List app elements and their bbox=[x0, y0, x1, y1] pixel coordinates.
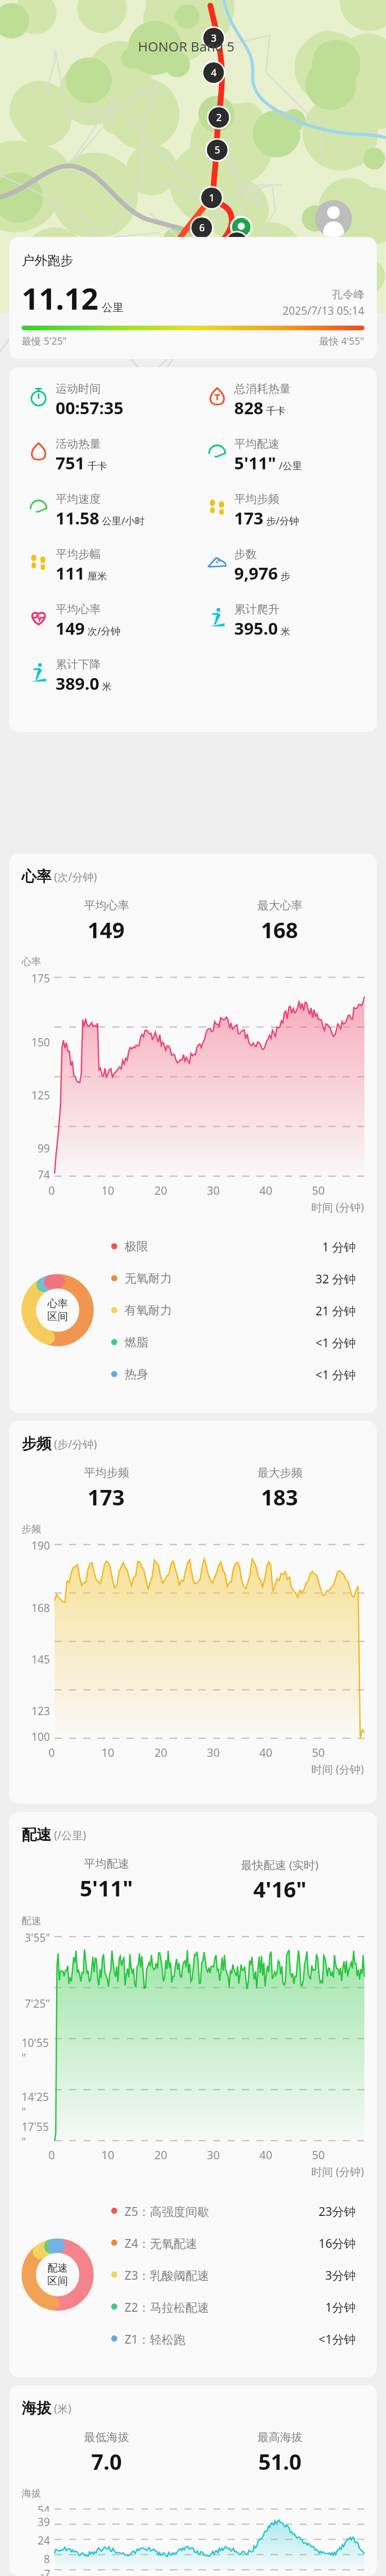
staticText: 149 bbox=[56, 617, 85, 640]
staticText: 20 bbox=[154, 2147, 168, 2162]
staticText: 50 bbox=[312, 2147, 325, 2162]
staticText: 123 bbox=[31, 1704, 50, 1719]
staticText: 389.0 bbox=[56, 672, 99, 695]
staticText: 173 bbox=[87, 1482, 125, 1512]
staticText: 燃脂 bbox=[125, 1335, 148, 1350]
staticText: 5'11" bbox=[234, 451, 276, 474]
staticText: 总消耗热量 bbox=[234, 382, 291, 396]
staticText: 3 bbox=[211, 31, 217, 45]
staticText: 9,976 bbox=[234, 562, 278, 585]
staticText: 千卡 bbox=[87, 460, 107, 472]
staticText: 16分钟 bbox=[319, 2235, 356, 2251]
staticText: <1 分钟 bbox=[315, 1366, 356, 1382]
staticText: 平均步频 bbox=[234, 492, 279, 506]
staticText: 热身 bbox=[125, 1367, 148, 1382]
staticText: 千卡 bbox=[266, 405, 286, 417]
staticText: 时间 (分钟) bbox=[311, 1762, 364, 1777]
staticText: -7 bbox=[41, 2567, 50, 2576]
staticText: 145 bbox=[31, 1652, 50, 1667]
staticText: Z1：轻松跑 bbox=[125, 2331, 186, 2347]
staticText: 5 bbox=[215, 143, 220, 157]
staticText: 运动时间 bbox=[56, 382, 101, 396]
staticText: 心率 bbox=[22, 867, 51, 886]
staticText: 828 bbox=[234, 396, 264, 419]
staticText: 1 bbox=[209, 191, 215, 205]
staticText: 平均心率 bbox=[56, 602, 101, 617]
staticText: 32 分钟 bbox=[315, 1270, 356, 1286]
staticText: 14'25" bbox=[22, 2090, 50, 2120]
staticText: 无氧耐力 bbox=[125, 1271, 172, 1286]
staticText: 0 bbox=[48, 1182, 55, 1198]
staticText: 10 bbox=[101, 2147, 115, 2162]
staticText: 心率 bbox=[47, 1297, 68, 1310]
staticText: 公里/小时 bbox=[102, 514, 145, 528]
staticText: 米 bbox=[280, 625, 290, 638]
staticText: 10'55" bbox=[22, 2036, 50, 2065]
staticText: 30 bbox=[207, 1182, 220, 1198]
staticText: (/公里) bbox=[54, 1828, 86, 1843]
staticText: 21 分钟 bbox=[315, 1302, 356, 1318]
staticText: <1 分钟 bbox=[315, 1334, 356, 1350]
staticText: 10 bbox=[101, 1744, 115, 1760]
staticText: 20 bbox=[154, 1744, 168, 1760]
staticText: 3分钟 bbox=[325, 2267, 356, 2283]
staticText: 4 bbox=[211, 66, 217, 79]
staticText: (步/分钟) bbox=[54, 1437, 97, 1452]
staticText: 173 bbox=[234, 506, 264, 530]
staticText: 最快配速 (实时) bbox=[241, 1857, 319, 1872]
staticText: 次/分钟 bbox=[87, 624, 121, 638]
staticText: 最快 4'55" bbox=[319, 334, 364, 348]
staticText: 23分钟 bbox=[319, 2203, 356, 2219]
staticText: 74 bbox=[38, 1167, 50, 1182]
staticText: <1分钟 bbox=[319, 2331, 356, 2347]
staticText: 配速 bbox=[47, 2262, 68, 2275]
staticText: 配速 bbox=[22, 1825, 51, 1844]
staticText: 0 bbox=[48, 2147, 55, 2162]
staticText: 175 bbox=[31, 971, 50, 986]
staticText: 30 bbox=[207, 1744, 220, 1760]
staticText: 150 bbox=[31, 1035, 50, 1050]
staticText: 11 bbox=[231, 236, 242, 249]
staticText: 20 bbox=[154, 1182, 168, 1198]
staticText: 步/分钟 bbox=[266, 514, 300, 528]
staticText: 海拔 bbox=[22, 2487, 41, 2500]
staticText: 最高海拔 bbox=[257, 2430, 303, 2445]
staticText: 40 bbox=[259, 1744, 273, 1760]
staticText: 米 bbox=[102, 681, 112, 693]
staticText: 149 bbox=[87, 915, 125, 944]
staticText: 户外跑步 bbox=[22, 252, 73, 268]
staticText: 区间 bbox=[47, 2275, 68, 2287]
staticText: 5'11" bbox=[80, 1873, 133, 1903]
staticText: 190 bbox=[31, 1538, 50, 1553]
staticText: 395.0 bbox=[234, 617, 278, 640]
staticText: 最大心率 bbox=[257, 899, 303, 913]
staticText: 步数 bbox=[234, 547, 257, 562]
staticText: Z5：高强度间歇 bbox=[125, 2203, 209, 2219]
staticText: 7'25" bbox=[25, 1996, 50, 2011]
staticText: 54 bbox=[38, 2503, 50, 2512]
button[interactable]: Profile bbox=[315, 200, 352, 237]
staticText: (米) bbox=[54, 2401, 72, 2416]
staticText: 时间 (分钟) bbox=[311, 1200, 364, 1215]
staticText: 有氧耐力 bbox=[125, 1303, 172, 1318]
staticText: 平均步频 bbox=[84, 1466, 129, 1480]
staticText: 24 bbox=[38, 2533, 50, 2548]
staticText: 极限 bbox=[125, 1239, 148, 1254]
staticText: 平均配速 bbox=[234, 437, 279, 451]
staticText: 11.12 bbox=[22, 278, 99, 318]
staticText: 累计爬升 bbox=[234, 602, 279, 617]
staticText: Z3：乳酸阈配速 bbox=[125, 2267, 209, 2283]
staticText: 步频 bbox=[22, 1434, 51, 1453]
staticText: 厘米 bbox=[87, 570, 107, 583]
staticText: 3'55" bbox=[25, 1930, 50, 1945]
staticText: Z2：马拉松配速 bbox=[125, 2299, 209, 2315]
staticText: 1分钟 bbox=[325, 2299, 356, 2315]
staticText: 751 bbox=[56, 451, 85, 474]
staticText: 区间 bbox=[47, 1310, 68, 1323]
staticText: 7.0 bbox=[91, 2447, 122, 2476]
staticText: 111 bbox=[56, 562, 85, 585]
staticText: 2025/7/13 05:14 bbox=[283, 303, 364, 318]
staticText: 配速 bbox=[22, 1915, 41, 1927]
